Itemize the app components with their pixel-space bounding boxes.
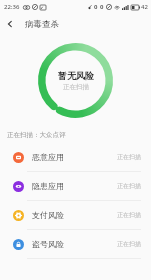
- staticText: 支付风险: [32, 210, 64, 220]
- staticText: 正在扫描: [117, 211, 141, 219]
- staticText: 22:36: [4, 3, 20, 11]
- button[interactable]: 隐患应用: [0, 172, 151, 200]
- staticText: 正在扫描: [117, 153, 141, 161]
- staticText: 恶意应用: [32, 152, 64, 162]
- staticText: 盗号风险: [32, 239, 64, 249]
- button[interactable]: 盗号风险: [0, 230, 151, 258]
- staticText: 正在扫描: [63, 83, 89, 91]
- staticText: 正在扫描: [117, 240, 141, 248]
- staticText: 暂无风险: [58, 70, 94, 81]
- staticText: 42: [141, 3, 148, 11]
- button[interactable]: 支付风险: [0, 201, 151, 229]
- staticText: 隐患应用: [32, 181, 64, 191]
- staticText: 0: [94, 3, 98, 11]
- staticText: 正在扫描: [117, 182, 141, 190]
- staticText: 正在扫描：大众点评: [7, 131, 66, 139]
- staticText: 病毒查杀: [25, 19, 59, 30]
- button[interactable]: 返回: [0, 14, 20, 34]
- staticText: 0: [100, 3, 104, 11]
- button[interactable]: 恶意应用: [0, 143, 151, 171]
